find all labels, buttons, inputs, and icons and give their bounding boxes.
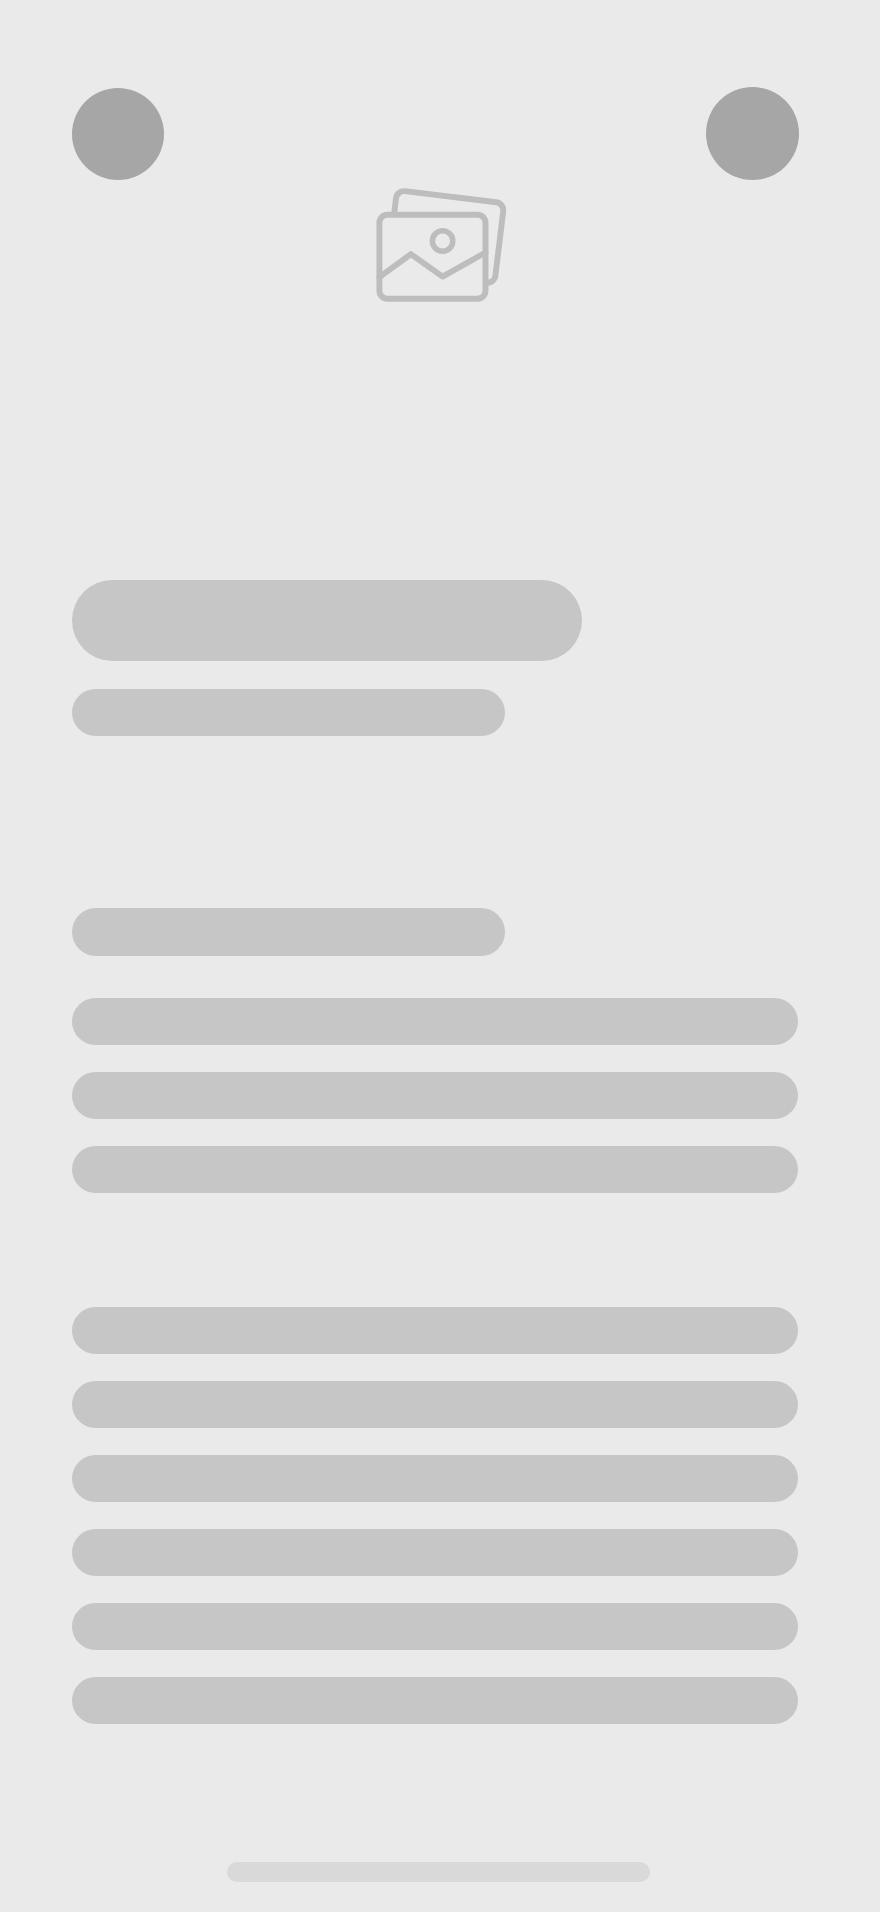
button[interactable] [72,580,582,736]
button[interactable] [72,1072,798,1119]
button[interactable] [72,1455,798,1502]
other: Image placeholder [373,183,509,307]
button[interactable] [72,1603,798,1650]
button[interactable] [72,1529,798,1576]
button[interactable]: More options [706,87,799,180]
button[interactable]: Open navigation menu [72,88,164,180]
button[interactable] [72,1677,798,1724]
button[interactable] [72,1381,798,1428]
button[interactable] [72,1307,798,1354]
button[interactable] [72,1146,798,1193]
button[interactable] [72,998,798,1045]
